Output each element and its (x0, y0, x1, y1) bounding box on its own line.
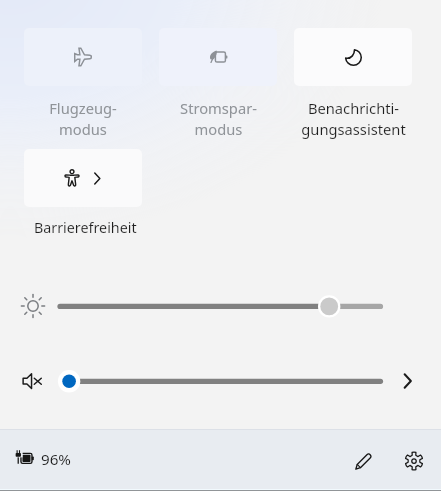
staticText: Flugzeug- modus (49, 98, 117, 139)
button[interactable] (24, 28, 142, 86)
staticText: Benachrichti- gungsassistent (301, 98, 406, 139)
staticText: Barrierefreiheit (34, 218, 137, 237)
button[interactable]: Settings (397, 444, 431, 478)
staticText: 96% (41, 449, 71, 470)
button[interactable]: More volume settings (394, 367, 422, 395)
button[interactable]: Edit quick settings (346, 444, 380, 478)
button[interactable]: 96% (10, 444, 75, 474)
staticText: Stromspar- modus (180, 98, 257, 139)
button[interactable] (159, 28, 277, 86)
button[interactable] (294, 28, 412, 86)
button[interactable] (24, 149, 142, 207)
